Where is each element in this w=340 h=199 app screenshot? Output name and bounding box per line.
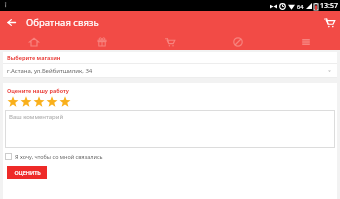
button[interactable]: ОЦЕНИТЬ [7, 166, 47, 179]
staticText: Выберите магазин [7, 54, 61, 61]
staticText: Оцените нашу работу [7, 87, 69, 94]
button[interactable]: Я хочу, чтобы со мной связались [5, 153, 103, 160]
staticText: Ваш комментарий [9, 113, 64, 121]
button[interactable]: Ваш комментарий [5, 110, 335, 148]
staticText: 13:57 [320, 1, 338, 11]
button[interactable]: Подарки [68, 33, 136, 50]
button[interactable]: г.Астана, ул.Бейбитшилик, 34 [3, 64, 337, 77]
staticText: 64 [297, 3, 304, 10]
button[interactable]: Оценка 3 [32, 95, 45, 108]
staticText: Обратная связь [26, 16, 99, 29]
button[interactable]: Меню [272, 33, 340, 50]
button[interactable]: Главная [0, 33, 68, 50]
button[interactable]: Оценка 5 [58, 95, 71, 108]
staticText: Я хочу, чтобы со мной связались [15, 153, 103, 160]
button[interactable]: Покупки [136, 33, 204, 50]
staticText: ОЦЕНИТЬ [14, 169, 41, 176]
button[interactable]: Назад [0, 11, 22, 33]
button[interactable]: Оценка 2 [19, 95, 32, 108]
button[interactable]: Скидки [204, 33, 272, 50]
button[interactable]: Оценка 4 [45, 95, 58, 108]
staticText: г.Астана, ул.Бейбитшилик, 34 [7, 67, 327, 75]
button[interactable]: Корзина [318, 11, 340, 33]
button[interactable]: Оценка 1 [6, 95, 19, 108]
